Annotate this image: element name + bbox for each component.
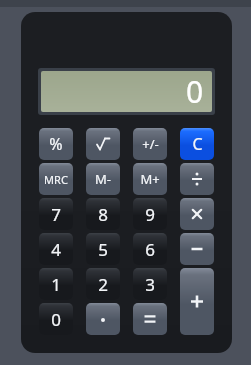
- button[interactable]: 2: [86, 268, 120, 300]
- staticText: 0: [186, 71, 204, 112]
- button[interactable]: 6: [133, 233, 167, 265]
- button[interactable]: 0: [39, 303, 73, 335]
- button[interactable]: C: [180, 128, 214, 160]
- staticText: M-: [95, 170, 111, 188]
- staticText: M+: [140, 170, 160, 188]
- staticText: 2: [98, 273, 108, 296]
- button[interactable]: Plus: [180, 268, 214, 335]
- button[interactable]: 7: [39, 198, 73, 230]
- button[interactable]: 4: [39, 233, 73, 265]
- button[interactable]: Minus: [180, 233, 214, 265]
- button[interactable]: 1: [39, 268, 73, 300]
- button[interactable]: Multiply: [180, 198, 214, 230]
- staticText: %: [49, 133, 63, 155]
- button[interactable]: %: [39, 128, 73, 160]
- staticText: 5: [98, 238, 108, 261]
- button[interactable]: M-: [86, 163, 120, 195]
- button[interactable]: +/-: [133, 128, 167, 160]
- staticText: 1: [51, 273, 61, 296]
- staticText: 8: [98, 203, 108, 226]
- staticText: +/-: [142, 135, 159, 153]
- button[interactable]: MRC: [39, 163, 73, 195]
- staticText: 4: [51, 238, 61, 261]
- button[interactable]: 9: [133, 198, 167, 230]
- staticText: MRC: [44, 172, 68, 187]
- staticText: 6: [145, 238, 155, 261]
- button[interactable]: Divide: [180, 163, 214, 195]
- button[interactable]: 5: [86, 233, 120, 265]
- button[interactable]: 8: [86, 198, 120, 230]
- button[interactable]: 3: [133, 268, 167, 300]
- button[interactable]: Square root: [86, 128, 120, 160]
- staticText: C: [192, 133, 203, 155]
- staticText: 0: [51, 308, 61, 331]
- button[interactable]: Equals: [133, 303, 167, 335]
- staticText: 3: [145, 273, 155, 296]
- staticText: 9: [145, 203, 155, 226]
- button[interactable]: M+: [133, 163, 167, 195]
- staticText: 7: [51, 203, 61, 226]
- button[interactable]: Decimal point: [86, 303, 120, 335]
